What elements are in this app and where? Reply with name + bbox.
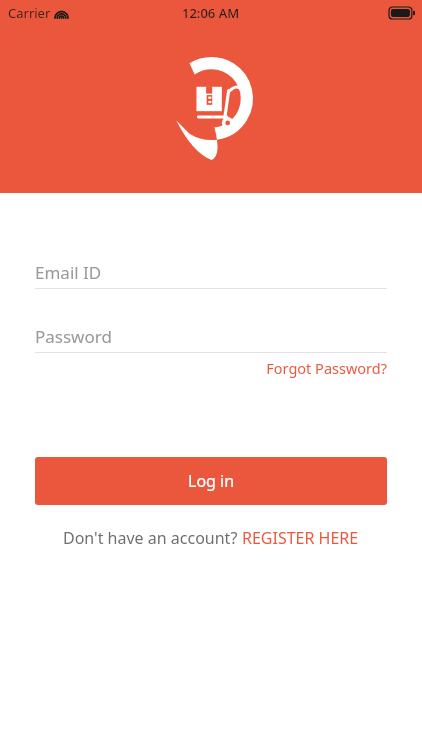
staticText: Forgot Password?: [266, 358, 387, 378]
button[interactable]: REGISTER HERE: [242, 527, 359, 549]
staticText: Email ID: [35, 261, 102, 284]
staticText: 12:06 AM: [182, 4, 240, 22]
button[interactable]: Forgot Password?: [227, 358, 387, 378]
button[interactable]: Log in: [35, 457, 387, 505]
staticText: Don't have an account?: [63, 527, 242, 549]
staticText: Log in: [188, 470, 235, 492]
staticText: REGISTER HERE: [242, 527, 359, 549]
staticText: Password: [35, 325, 112, 348]
staticText: Carrier: [8, 4, 51, 22]
